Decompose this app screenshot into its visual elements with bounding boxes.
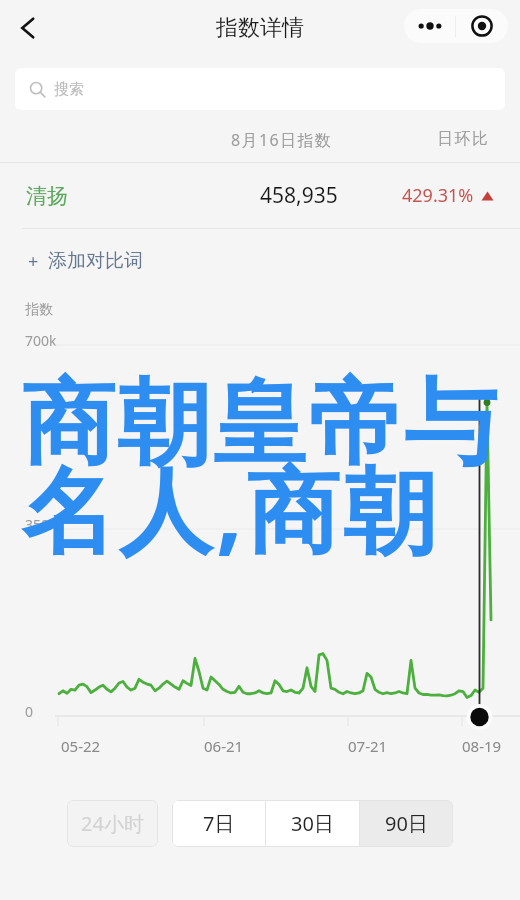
button[interactable]: More options [404, 9, 455, 43]
staticText: 700k [25, 331, 57, 350]
button[interactable]: + [0, 233, 520, 289]
button[interactable]: 90日 [360, 800, 453, 847]
staticText: 日环比 [437, 129, 490, 149]
staticText: 清扬 [26, 183, 68, 209]
staticText: 06-21 [204, 736, 244, 756]
staticText: 07-21 [348, 736, 388, 756]
staticText: 05-22 [61, 736, 101, 756]
staticText: 458,935 [260, 181, 338, 210]
staticText: 90日 [385, 810, 428, 837]
staticText: 指数 [25, 301, 53, 319]
button[interactable]: 清扬 [0, 163, 520, 228]
staticText: + [28, 249, 39, 274]
staticText: 商朝皇帝与 [22, 365, 500, 482]
button[interactable]: 30日 [266, 800, 359, 847]
staticText: 指数详情 [216, 14, 304, 42]
staticText: 30日 [291, 810, 334, 837]
staticText: 搜索 [54, 80, 84, 99]
button[interactable]: Back [6, 6, 50, 50]
staticText: 08-19 [462, 736, 502, 756]
staticText: 429.31% [402, 183, 474, 208]
button[interactable]: 7日 [172, 800, 265, 847]
staticText: 0 [25, 702, 34, 721]
staticText: 8月16日指数 [231, 129, 333, 151]
staticText: 350k [25, 515, 57, 534]
staticText: 24小时 [81, 810, 144, 837]
button[interactable]: 24小时 [67, 800, 158, 847]
staticText: 添加对比词 [48, 249, 143, 273]
button[interactable]: 搜索 [15, 68, 505, 110]
staticText: 7日 [203, 810, 235, 837]
button[interactable]: Close mini program [456, 9, 508, 43]
staticText: 名人,商朝 [22, 445, 441, 572]
